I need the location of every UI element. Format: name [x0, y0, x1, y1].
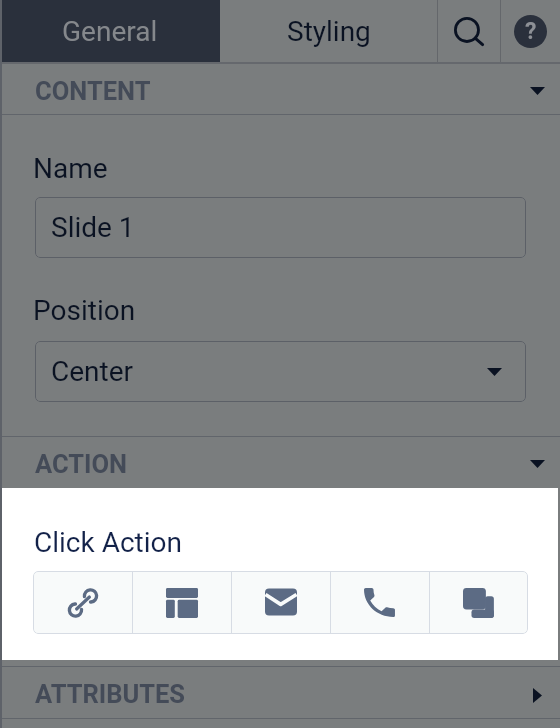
staticText: Click Action — [34, 526, 182, 559]
staticText: Styling — [287, 15, 371, 48]
button[interactable]: Page layout — [133, 571, 231, 634]
button[interactable]: Popup — [430, 571, 528, 634]
button[interactable]: Phone — [331, 571, 429, 634]
staticText: Center — [51, 355, 134, 388]
button[interactable]: CONTENT — [0, 64, 560, 114]
button[interactable]: General — [0, 0, 220, 62]
button[interactable]: Search — [438, 0, 500, 62]
button[interactable]: Center — [35, 341, 526, 402]
staticText: General — [62, 15, 158, 48]
button[interactable]: Link — [33, 571, 132, 634]
staticText: CONTENT — [35, 76, 151, 106]
staticText: ACTION — [35, 449, 128, 479]
staticText: ATTRIBUTES — [35, 679, 185, 709]
button[interactable]: Help — [501, 0, 560, 62]
button[interactable]: Styling — [220, 0, 437, 62]
button[interactable]: Email — [232, 571, 330, 634]
button[interactable]: Slide 1 — [35, 197, 526, 258]
button[interactable]: ATTRIBUTES — [0, 667, 560, 718]
button[interactable]: ACTION — [0, 437, 560, 488]
staticText: ? — [525, 18, 537, 45]
staticText: Name — [33, 152, 108, 185]
staticText: Position — [33, 294, 136, 327]
staticText: Slide 1 — [51, 211, 135, 244]
